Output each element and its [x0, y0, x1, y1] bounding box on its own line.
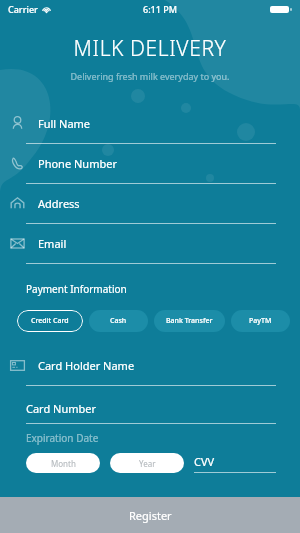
button[interactable]: Register: [0, 497, 300, 533]
other: Phone: [10, 156, 25, 171]
staticText: Full Name: [38, 116, 91, 131]
staticText: Phone Number: [38, 156, 117, 171]
other: Address: [10, 196, 25, 211]
staticText: Delivering fresh milk everyday to you.: [0, 70, 300, 82]
button[interactable]: Month: [26, 453, 100, 473]
button[interactable]: Year: [110, 453, 184, 473]
staticText: Bank Transfer: [166, 316, 213, 326]
button[interactable]: Person: [0, 104, 300, 144]
staticText: Month: [51, 458, 76, 469]
button[interactable]: CVV: [194, 454, 276, 473]
staticText: Card Holder Name: [38, 358, 135, 373]
staticText: Credit Card: [31, 316, 69, 326]
other: Card: [10, 358, 25, 373]
other: Person: [10, 116, 25, 131]
staticText: Year: [139, 458, 156, 469]
staticText: Email: [38, 236, 67, 251]
staticText: Card Number: [26, 401, 97, 416]
staticText: CVV: [194, 454, 215, 469]
staticText: Carrier: [8, 3, 38, 15]
staticText: Cash: [110, 316, 127, 326]
button[interactable]: Phone: [0, 144, 300, 184]
button[interactable]: Address: [0, 184, 300, 224]
button[interactable]: Card Number: [0, 394, 300, 424]
staticText: Address: [38, 196, 80, 211]
button[interactable]: PayTM: [231, 310, 290, 332]
button[interactable]: Credit Card: [17, 310, 83, 332]
button[interactable]: Cash: [89, 310, 148, 332]
button[interactable]: Card: [0, 346, 300, 386]
button[interactable]: Bank Transfer: [154, 310, 225, 332]
staticText: 6:11 PM: [143, 3, 177, 15]
staticText: MILK DELIVERY: [0, 34, 300, 63]
other: Email: [10, 236, 25, 251]
staticText: Expiration Date: [26, 431, 99, 445]
button[interactable]: Email: [0, 224, 300, 264]
staticText: Payment Information: [26, 282, 127, 296]
staticText: PayTM: [249, 316, 272, 326]
staticText: Register: [129, 508, 172, 523]
